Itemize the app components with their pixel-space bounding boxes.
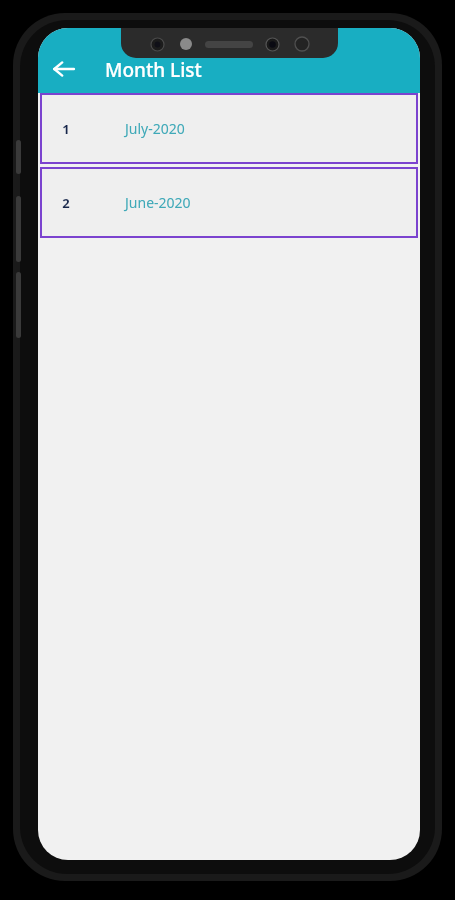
staticText: June-2020 [125, 193, 191, 212]
staticText: 2 [62, 194, 70, 212]
staticText: Month List [105, 57, 202, 83]
staticText: July-2020 [125, 119, 185, 138]
button[interactable]: 2 [40, 167, 418, 238]
button[interactable]: Back [42, 47, 86, 91]
staticText: 1 [62, 120, 70, 138]
button[interactable]: 1 [40, 93, 418, 164]
